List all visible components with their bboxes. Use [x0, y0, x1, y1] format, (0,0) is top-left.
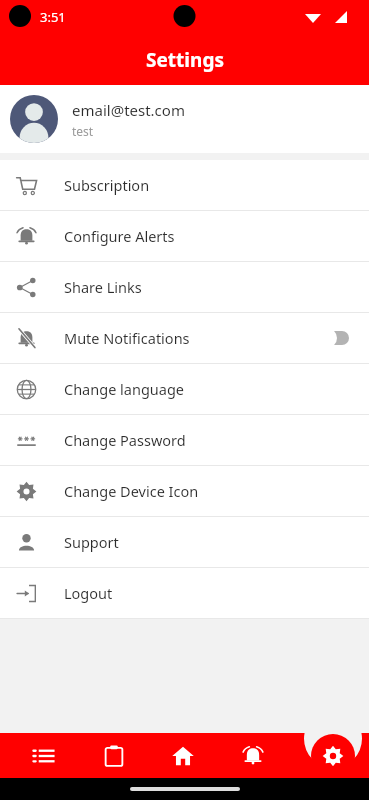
- button[interactable]: Subscription: [0, 160, 369, 210]
- button[interactable]: Settings: [311, 734, 355, 778]
- button[interactable]: Change Password: [0, 415, 369, 465]
- staticText: Share Links: [64, 277, 142, 297]
- button[interactable]: Menu: [18, 733, 70, 778]
- button[interactable]: Change Device Icon: [0, 466, 369, 516]
- button[interactable]: Mute Notifications: [0, 313, 369, 363]
- staticText: Mute Notifications: [64, 328, 190, 348]
- staticText: Configure Alerts: [64, 226, 175, 246]
- staticText: test: [72, 123, 94, 139]
- button[interactable]: Support: [0, 517, 369, 567]
- button[interactable]: Home: [157, 733, 209, 778]
- staticText: Subscription: [64, 175, 150, 195]
- staticText: Settings: [146, 47, 224, 73]
- button[interactable]: Share Links: [0, 262, 369, 312]
- button[interactable]: Alerts: [227, 733, 279, 778]
- button[interactable]: [313, 327, 353, 349]
- staticText: Change Device Icon: [64, 481, 199, 501]
- button[interactable]: Tasks: [88, 733, 140, 778]
- staticText: Logout: [64, 583, 113, 603]
- button[interactable]: Logout: [0, 568, 369, 618]
- staticText: Change Password: [64, 430, 186, 450]
- staticText: Change language: [64, 379, 185, 399]
- button[interactable]: Configure Alerts: [0, 211, 369, 261]
- button[interactable]: email@test.com: [0, 85, 369, 153]
- staticText: Support: [64, 532, 119, 552]
- staticText: 3:51: [40, 8, 66, 26]
- staticText: email@test.com: [72, 100, 185, 120]
- button[interactable]: Change language: [0, 364, 369, 414]
